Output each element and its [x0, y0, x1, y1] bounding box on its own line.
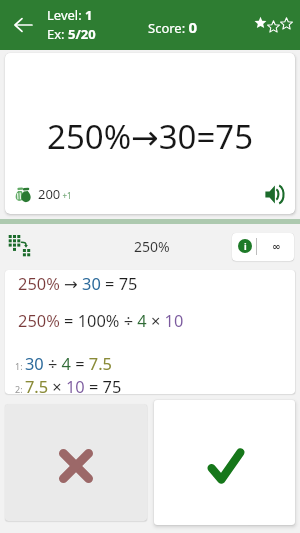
- staticText: 200 +1: [38, 185, 72, 203]
- button[interactable]: Simplify: [5, 234, 31, 260]
- staticText: i: [244, 240, 247, 252]
- staticText: 250%: [134, 237, 170, 256]
- button[interactable]: Info: [238, 239, 252, 253]
- staticText: 250% = 100% ÷ 4 × 10: [18, 309, 184, 331]
- staticText: 250% → 30 = 75: [18, 272, 138, 294]
- button[interactable]: Coins earned: [14, 184, 72, 204]
- staticText: Level: 1: [47, 6, 93, 24]
- button[interactable]: Play sound: [261, 181, 287, 207]
- staticText: 2: 7.5 × 10 = 75: [15, 375, 122, 394]
- button[interactable]: Wrong answer: [5, 404, 147, 521]
- button[interactable]: Correct answer: [154, 400, 295, 525]
- staticText: 250%→30=75: [47, 114, 254, 159]
- staticText: Score: 0: [148, 17, 198, 37]
- button[interactable]: Rating: 1 of 3 stars: [252, 14, 294, 36]
- staticText: 1: 30 ÷ 4 = 7.5: [15, 352, 112, 374]
- staticText: Ex: 5/20: [47, 25, 96, 43]
- button[interactable]: Back: [10, 12, 36, 38]
- staticText: ∞: [272, 241, 281, 253]
